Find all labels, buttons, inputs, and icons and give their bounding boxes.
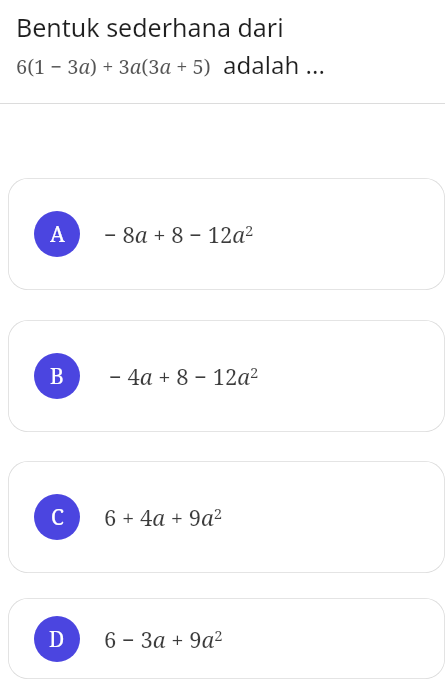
staticText: C: [51, 503, 64, 532]
button[interactable]: A: [8, 178, 445, 290]
staticText: A: [50, 220, 65, 249]
button[interactable]: C: [8, 461, 445, 573]
staticText: Bentuk sederhana dari: [16, 10, 284, 44]
button[interactable]: B: [8, 320, 445, 432]
staticText: D: [49, 625, 65, 654]
staticText: − 8a + 8 − 12a2: [104, 219, 254, 249]
button[interactable]: D: [8, 598, 445, 679]
staticText: 6 − 3a + 9a2: [104, 624, 223, 654]
staticText: 6 + 4a + 9a2: [104, 502, 223, 532]
staticText: 6(1 − 3a) + 3a(3a + 5) adalah ...: [16, 48, 325, 81]
staticText: − 4a + 8 − 12a2: [109, 361, 259, 391]
staticText: B: [50, 362, 64, 391]
